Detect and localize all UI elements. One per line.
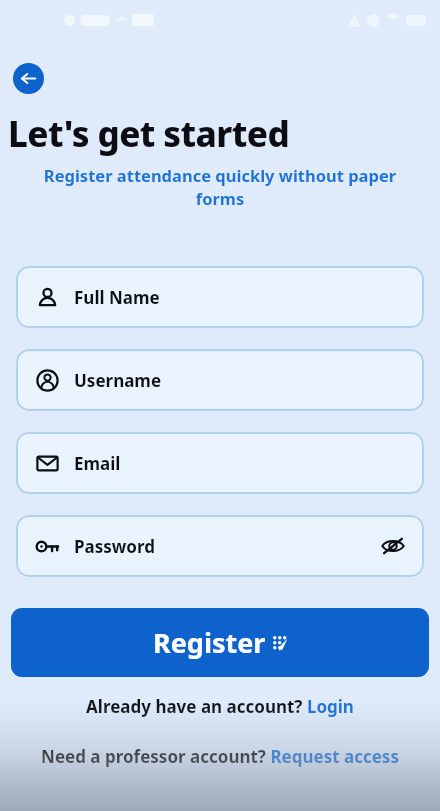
staticText: Full Name <box>74 286 160 309</box>
staticText: Already have an account? Login <box>86 695 354 718</box>
staticText: Register attendance quickly without pape… <box>20 164 420 210</box>
staticText: Password <box>74 535 155 558</box>
button[interactable]: Email <box>16 432 424 494</box>
staticText: Let's get started <box>8 110 290 158</box>
staticText: Email <box>74 452 121 475</box>
button[interactable]: Show password <box>378 531 408 561</box>
button[interactable]: Register <box>11 608 429 677</box>
staticText: Username <box>74 369 162 392</box>
button[interactable]: Password <box>16 515 424 577</box>
button[interactable]: Username <box>16 349 424 411</box>
button[interactable]: Already have an account? Login <box>0 695 440 718</box>
staticText: Register <box>153 624 266 661</box>
button[interactable]: Back <box>13 63 44 94</box>
staticText: Need a professor account? Request access <box>41 745 399 768</box>
button[interactable]: Full Name <box>16 266 424 328</box>
button[interactable]: Need a professor account? Request access <box>0 745 440 768</box>
